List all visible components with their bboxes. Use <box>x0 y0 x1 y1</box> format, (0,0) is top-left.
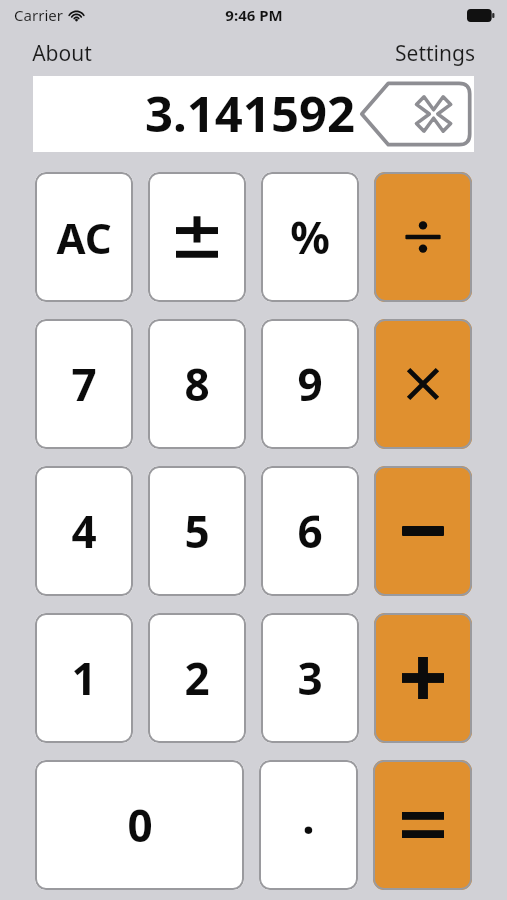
staticText: 8 <box>184 354 210 414</box>
button[interactable]: 4 <box>35 466 133 596</box>
staticText: About <box>32 39 92 68</box>
staticText: 1 <box>71 648 97 708</box>
button[interactable]: 6 <box>261 466 359 596</box>
button[interactable]: 3 <box>261 613 359 743</box>
staticText: 2 <box>184 648 210 708</box>
staticText: Settings <box>395 39 475 68</box>
button[interactable]: 2 <box>148 613 246 743</box>
button[interactable]: Minus <box>374 466 472 596</box>
staticText: 9:46 PM <box>225 5 283 25</box>
staticText: % <box>290 207 330 267</box>
button[interactable]: Plus <box>374 613 472 743</box>
staticText: 5 <box>184 501 210 561</box>
button[interactable]: 9 <box>261 319 359 449</box>
button[interactable]: 5 <box>148 466 246 596</box>
button[interactable]: . <box>259 760 358 890</box>
button[interactable]: AC <box>35 172 133 302</box>
button[interactable]: 8 <box>148 319 246 449</box>
button[interactable]: Divide <box>374 172 472 302</box>
button[interactable]: % <box>261 172 359 302</box>
button[interactable]: Settings <box>387 35 483 72</box>
button[interactable]: Plus minus <box>148 172 246 302</box>
staticText: . <box>302 787 315 847</box>
button[interactable]: About <box>24 35 100 72</box>
staticText: 6 <box>297 501 323 561</box>
button[interactable]: Delete <box>359 81 472 147</box>
button[interactable]: Multiply <box>374 319 472 449</box>
button[interactable]: 7 <box>35 319 133 449</box>
staticText: 3 <box>297 648 323 708</box>
staticText: 3.141592 <box>145 80 355 147</box>
button[interactable]: 0 <box>35 760 244 890</box>
button[interactable]: Equals <box>373 760 472 890</box>
staticText: 7 <box>71 354 97 414</box>
staticText: AC <box>56 209 112 266</box>
staticText: 0 <box>127 795 153 855</box>
staticText: 4 <box>71 501 97 561</box>
staticText: Carrier <box>14 5 63 25</box>
staticText: 9 <box>297 354 323 414</box>
button[interactable]: 1 <box>35 613 133 743</box>
